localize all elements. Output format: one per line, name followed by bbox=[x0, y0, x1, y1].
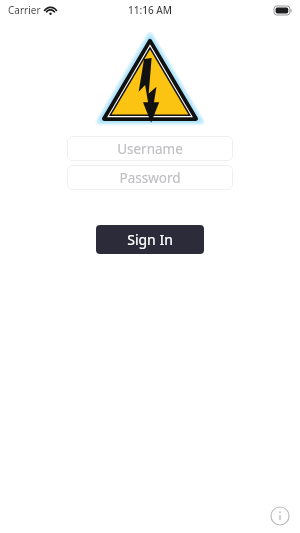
staticText: Password bbox=[119, 169, 181, 187]
button[interactable]: Info bbox=[266, 502, 294, 530]
staticText: 11:16 AM bbox=[128, 3, 172, 17]
staticText: Sign In bbox=[127, 230, 173, 249]
staticText: Carrier bbox=[8, 3, 41, 17]
button[interactable]: Username bbox=[67, 136, 233, 161]
staticText: Username bbox=[117, 140, 183, 158]
button[interactable]: Sign In bbox=[96, 225, 204, 254]
button[interactable]: Password bbox=[67, 165, 233, 190]
